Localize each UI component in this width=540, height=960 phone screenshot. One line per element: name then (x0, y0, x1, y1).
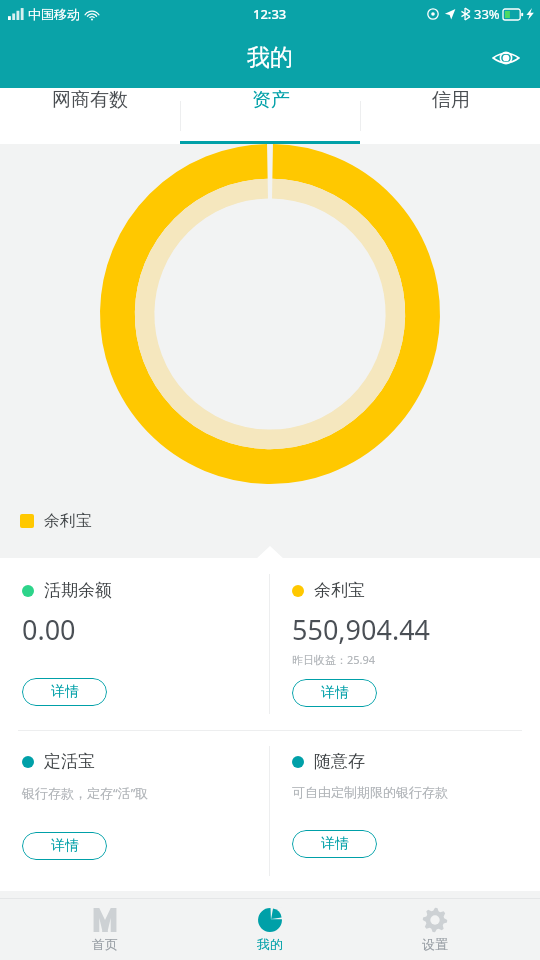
staticText: 活期余额 (44, 580, 112, 601)
staticText: 定活宝 (44, 751, 95, 772)
staticText: 550,904.44 (292, 611, 431, 648)
button[interactable]: 详情 (22, 678, 107, 706)
staticText: 我的 (247, 43, 293, 72)
staticText: 中国移动 (28, 6, 80, 22)
button[interactable]: 资产 (181, 88, 360, 112)
staticText: 12:33 (253, 5, 287, 23)
staticText: 详情 (51, 837, 79, 855)
staticText: 可自由定制期限的银行存款 (292, 784, 448, 800)
staticText: 详情 (321, 835, 349, 853)
button[interactable]: 首页 (45, 899, 165, 960)
staticText: 详情 (51, 683, 79, 701)
button[interactable]: 网商有数 (0, 88, 180, 112)
button[interactable]: 我的 (210, 899, 330, 960)
staticText: 资产 (252, 88, 290, 112)
staticText: 银行存款，定存“活”取 (22, 784, 149, 802)
staticText: 余利宝 (44, 511, 92, 531)
button[interactable]: 详情 (292, 679, 377, 707)
staticText: 33% (474, 5, 500, 23)
staticText: 余利宝 (314, 580, 365, 601)
button[interactable]: 随意存 (270, 731, 540, 858)
staticText: 随意存 (314, 751, 365, 772)
button[interactable]: 余利宝 (270, 558, 540, 707)
staticText: 我的 (257, 936, 283, 952)
button[interactable]: 设置 (375, 899, 495, 960)
staticText: 信用 (432, 88, 470, 112)
button[interactable]: 活期余额 (0, 558, 269, 706)
button[interactable]: Toggle visibility (486, 38, 526, 78)
staticText: 设置 (422, 936, 448, 952)
staticText: 首页 (92, 936, 118, 952)
button[interactable]: 信用 (361, 88, 540, 112)
staticText: 详情 (321, 684, 349, 702)
staticText: 昨日收益：25.94 (292, 652, 376, 667)
staticText: 0.00 (22, 611, 76, 648)
button[interactable]: 详情 (22, 832, 107, 860)
button[interactable]: 详情 (292, 830, 377, 858)
button[interactable]: 定活宝 (0, 731, 269, 860)
staticText: 网商有数 (52, 88, 128, 112)
